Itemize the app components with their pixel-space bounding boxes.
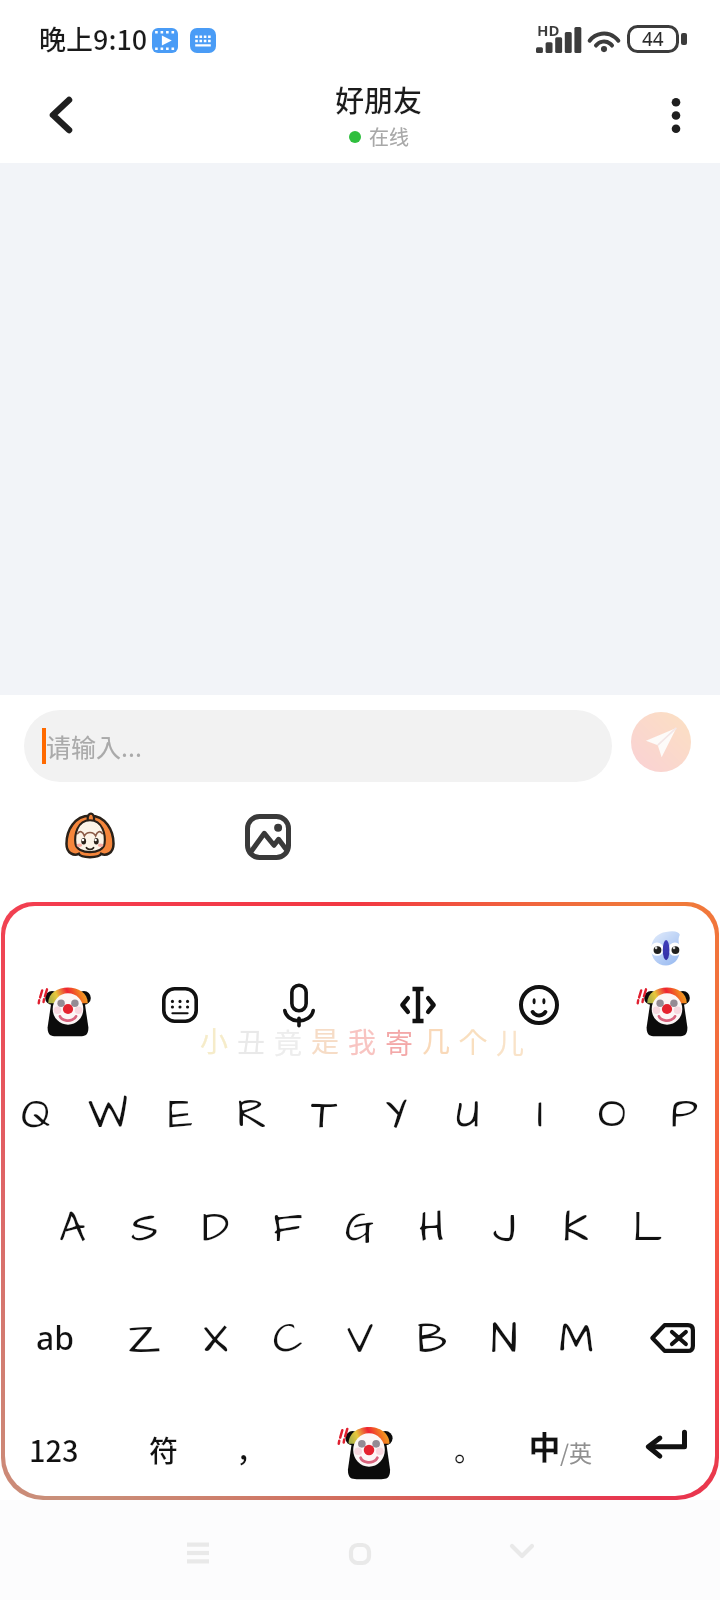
staticText: Z xyxy=(128,1311,161,1369)
staticText: K xyxy=(563,1200,589,1258)
staticText: 晚上9:10 xyxy=(39,19,148,58)
staticText: 在线 xyxy=(369,122,409,151)
button[interactable]: B xyxy=(396,1304,468,1376)
button[interactable]: E xyxy=(144,1079,216,1151)
button[interactable]: 123 xyxy=(18,1413,90,1485)
staticText: 几 xyxy=(422,1020,451,1061)
staticText: 个 xyxy=(459,1021,488,1062)
staticText: 符 xyxy=(149,1428,179,1470)
button[interactable]: ab xyxy=(19,1302,91,1374)
button[interactable]: V xyxy=(324,1304,396,1376)
staticText: 寄 xyxy=(385,1022,414,1063)
button[interactable]: Home xyxy=(330,1524,390,1584)
staticText: T xyxy=(311,1086,338,1144)
staticText: V xyxy=(347,1311,374,1369)
staticText: C xyxy=(273,1311,303,1369)
button[interactable]: X xyxy=(180,1304,252,1376)
button[interactable]: Move cursor xyxy=(392,979,444,1031)
button[interactable]: Emoji panel xyxy=(513,979,565,1031)
button[interactable]: R xyxy=(216,1079,288,1151)
staticText: 丑 xyxy=(237,1021,266,1062)
button[interactable]: Z xyxy=(108,1304,180,1376)
button[interactable]: H xyxy=(396,1193,468,1265)
staticText: G xyxy=(345,1200,375,1258)
staticText: Y xyxy=(385,1086,408,1144)
staticText: 小 xyxy=(200,1020,229,1061)
staticText: A xyxy=(59,1200,86,1258)
button[interactable]: Send xyxy=(631,712,691,772)
staticText: H xyxy=(419,1200,445,1258)
staticText: B xyxy=(417,1311,447,1369)
button[interactable]: N xyxy=(468,1304,540,1376)
button[interactable]: 请输入... xyxy=(24,710,612,782)
staticText: 请输入... xyxy=(46,728,142,764)
button[interactable]: Voice input xyxy=(273,979,325,1031)
button[interactable]: I xyxy=(504,1079,576,1151)
staticText: I xyxy=(537,1086,544,1144)
button[interactable]: Screen recording xyxy=(152,28,178,53)
button[interactable]: 。 xyxy=(433,1413,505,1485)
staticText: 123 xyxy=(29,1428,79,1470)
button[interactable]: G xyxy=(324,1193,396,1265)
button[interactable]: Enter xyxy=(630,1410,702,1482)
button[interactable]: Switch keyboard xyxy=(152,977,208,1033)
button[interactable]: D xyxy=(180,1193,252,1265)
button[interactable]: O xyxy=(576,1079,648,1151)
button[interactable]: Back xyxy=(31,85,91,145)
staticText: 好朋友 xyxy=(335,78,423,120)
staticText: ab xyxy=(36,1316,75,1360)
button[interactable]: Y xyxy=(360,1079,432,1151)
staticText: 44 xyxy=(642,26,664,52)
staticText: J xyxy=(493,1200,516,1258)
staticText: S xyxy=(131,1200,158,1258)
button[interactable]: Pick image xyxy=(238,807,298,867)
staticText: N xyxy=(491,1311,518,1369)
staticText: F xyxy=(273,1200,303,1258)
button[interactable]: F xyxy=(252,1193,324,1265)
button[interactable]: ， xyxy=(215,1413,287,1485)
button[interactable]: 符 xyxy=(128,1413,200,1485)
button[interactable]: Backspace xyxy=(636,1302,708,1374)
staticText: /英 xyxy=(560,1435,593,1468)
button[interactable]: Input method xyxy=(190,28,216,53)
staticText: U xyxy=(456,1086,480,1144)
button[interactable]: Recents xyxy=(168,1523,228,1583)
button[interactable]: C xyxy=(252,1304,324,1376)
staticText: 是 xyxy=(311,1020,340,1061)
button[interactable]: K xyxy=(540,1193,612,1265)
button[interactable]: Q xyxy=(5,1079,72,1151)
button[interactable]: Emoji xyxy=(58,805,122,869)
button[interactable]: M xyxy=(540,1304,612,1376)
staticText: 我 xyxy=(348,1021,377,1062)
staticText: W xyxy=(88,1086,128,1144)
button[interactable]: P xyxy=(648,1079,715,1151)
button[interactable]: More options xyxy=(646,86,706,146)
button[interactable]: L xyxy=(612,1193,684,1265)
button[interactable]: 中 xyxy=(509,1409,613,1481)
staticText: X xyxy=(203,1311,229,1369)
staticText: 中 xyxy=(529,1423,560,1468)
staticText: R xyxy=(237,1086,267,1144)
button[interactable]: W xyxy=(72,1079,144,1151)
staticText: D xyxy=(202,1200,230,1258)
staticText: Q xyxy=(21,1086,51,1144)
button[interactable]: U xyxy=(432,1079,504,1151)
staticText: M xyxy=(559,1311,594,1369)
staticText: 儿 xyxy=(496,1022,525,1063)
staticText: L xyxy=(633,1200,663,1258)
staticText: 竟 xyxy=(274,1022,303,1063)
staticText: HD xyxy=(537,20,560,40)
staticText: P xyxy=(671,1086,698,1144)
button[interactable]: S xyxy=(108,1193,180,1265)
staticText: ， xyxy=(236,1428,266,1470)
button[interactable]: T xyxy=(288,1079,360,1151)
button[interactable]: Hide keyboard xyxy=(492,1521,552,1581)
button[interactable]: J xyxy=(468,1193,540,1265)
staticText: E xyxy=(168,1086,193,1144)
staticText: 。 xyxy=(454,1428,484,1470)
staticText: O xyxy=(598,1086,627,1144)
button[interactable]: A xyxy=(36,1193,108,1265)
